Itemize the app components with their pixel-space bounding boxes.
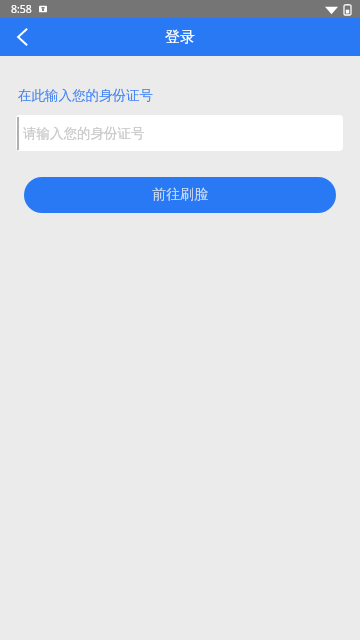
button[interactable]: 请输入您的身份证号 (16, 115, 343, 151)
staticText: 8:58 (11, 2, 32, 16)
staticText: 前往刷脸 (152, 186, 208, 204)
button[interactable]: 前往刷脸 (24, 177, 336, 213)
staticText: 在此输入您的身份证号 (18, 87, 153, 104)
staticText: 登录 (0, 28, 360, 47)
button[interactable]: Back (0, 18, 44, 56)
staticText: 请输入您的身份证号 (23, 125, 145, 142)
